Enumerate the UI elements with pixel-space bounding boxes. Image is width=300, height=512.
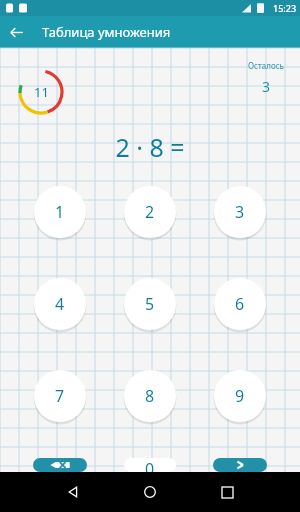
button[interactable]: 7	[34, 370, 86, 422]
button[interactable]: Next	[213, 458, 267, 472]
button[interactable]: Recents	[212, 477, 242, 507]
staticText: 7	[55, 385, 65, 407]
staticText: 2	[145, 201, 155, 223]
staticText: 0	[145, 458, 155, 472]
button[interactable]: Back	[0, 16, 32, 48]
button[interactable]: 6	[214, 278, 266, 330]
button[interactable]: Home	[135, 477, 165, 507]
button[interactable]: 5	[124, 278, 176, 330]
button[interactable]: 4	[34, 278, 86, 330]
staticText: Осталось	[248, 60, 284, 71]
button[interactable]: 0	[124, 458, 176, 472]
button[interactable]: 3	[214, 186, 266, 238]
button[interactable]: Backspace	[33, 458, 87, 472]
staticText: 6	[235, 293, 245, 315]
staticText: 5	[145, 293, 155, 315]
staticText: 8	[145, 385, 155, 407]
staticText: Таблица умножения	[42, 23, 171, 41]
staticText: 2 · 8 =	[115, 130, 185, 164]
staticText: 4	[55, 293, 65, 315]
staticText: 3	[262, 77, 271, 96]
button[interactable]: 1	[34, 186, 86, 238]
staticText: 3	[235, 201, 245, 223]
button[interactable]: 9	[214, 370, 266, 422]
button[interactable]: 8	[124, 370, 176, 422]
button[interactable]: 2	[124, 186, 176, 238]
staticText: 1	[55, 201, 65, 223]
button[interactable]: Back	[58, 477, 88, 507]
staticText: 9	[235, 385, 245, 407]
staticText: 11	[34, 83, 49, 101]
staticText: 15:23	[273, 2, 297, 14]
